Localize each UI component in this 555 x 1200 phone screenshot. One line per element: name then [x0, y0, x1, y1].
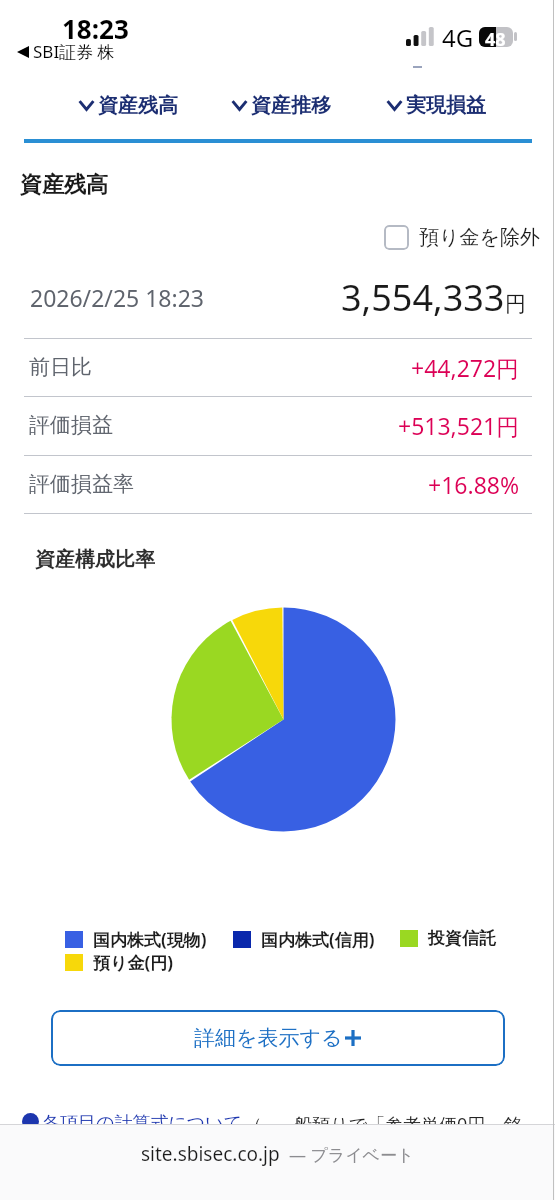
staticText: 資産推移 — [251, 93, 331, 118]
staticText: 預り金を除外 — [419, 225, 540, 250]
staticText: 4G — [442, 21, 474, 54]
staticText: 実現損益 — [406, 93, 486, 118]
staticText: +513,521円 — [398, 410, 520, 441]
staticText: 評価損益率 — [29, 471, 134, 497]
staticText: 評価損益 — [29, 412, 113, 438]
staticText: 各項目の計算式について — [42, 1112, 243, 1135]
staticText: 資産残高 — [98, 93, 178, 118]
button[interactable]: 資産残高 — [79, 93, 178, 118]
button[interactable]: 国内株式(現物) — [65, 928, 207, 951]
staticText: SBI証券 株 — [33, 40, 115, 63]
staticText: （… 般預りで「参考単価0円」銘 — [244, 1112, 522, 1137]
staticText: 資産残高 — [20, 171, 108, 199]
button[interactable]: 実現損益 — [387, 93, 486, 118]
button[interactable]: 前日比 — [24, 338, 532, 396]
staticText: 資産構成比率 — [35, 547, 155, 572]
staticText: +44,272円 — [411, 352, 520, 383]
staticText: 3,554,333 — [341, 273, 505, 322]
button[interactable]: 詳細を表示する — [51, 1010, 505, 1066]
button[interactable]: site.sbisec.co.jp — [0, 1138, 555, 1170]
button[interactable]: 資産推移 — [232, 93, 331, 118]
staticText: 円 — [505, 291, 526, 317]
staticText: 国内株式(現物) — [93, 928, 207, 951]
button[interactable]: Back to SBI証券 株 — [17, 40, 115, 63]
staticText: 投資信託 — [428, 928, 496, 949]
staticText: 2026/2/25 18:23 — [30, 282, 204, 313]
staticText: 前日比 — [29, 354, 92, 380]
button[interactable]: 預り金を除外 — [384, 225, 540, 250]
staticText: 預り金(円) — [93, 951, 173, 974]
staticText: site.sbisec.co.jp — [141, 1141, 280, 1167]
button[interactable]: 投資信託 — [400, 928, 496, 949]
staticText: 国内株式(信用) — [261, 928, 375, 951]
button[interactable]: 預り金(円) — [65, 951, 173, 974]
button[interactable]: 国内株式(信用) — [233, 928, 375, 951]
other: Battery 48 percent — [479, 27, 513, 52]
staticText: +16.88% — [428, 469, 520, 500]
staticText: 48 — [485, 27, 506, 52]
button[interactable]: 評価損益率 — [24, 455, 532, 513]
staticText: 詳細を表示する — [194, 1025, 343, 1051]
button[interactable]: 評価損益 — [24, 396, 532, 454]
other: Signal strength — [406, 27, 433, 46]
staticText: 18:23 — [62, 11, 129, 46]
staticText: — プライベート — [289, 1143, 415, 1166]
